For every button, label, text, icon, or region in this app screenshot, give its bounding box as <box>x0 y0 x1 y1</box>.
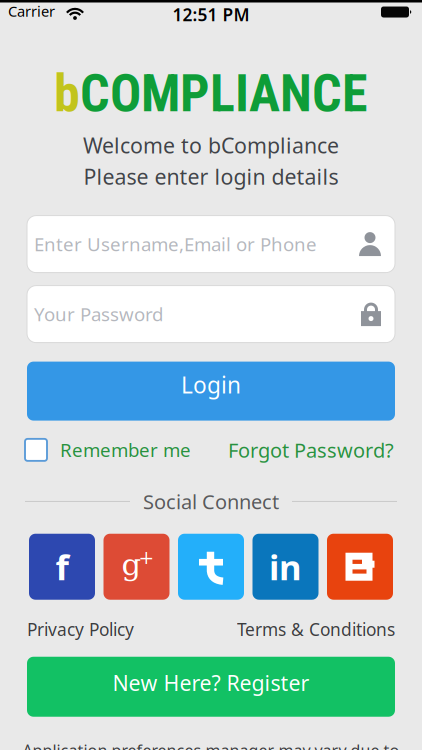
staticText: Carrier <box>8 1 55 21</box>
button[interactable]: Privacy Policy <box>27 618 134 641</box>
staticText: Welcome to bCompliance <box>83 131 339 159</box>
button[interactable]: Google Plus <box>103 534 169 600</box>
button[interactable]: Your Password <box>27 286 395 343</box>
staticText: Application preferences manager may vary… <box>22 740 399 750</box>
staticText: Social Connect <box>143 488 279 515</box>
button[interactable]: Facebook <box>29 534 95 600</box>
button[interactable]: Twitter <box>178 534 244 600</box>
staticText: f <box>55 544 68 590</box>
staticText: g <box>121 547 141 582</box>
staticText: + <box>138 547 154 568</box>
staticText: Remember me <box>60 437 191 462</box>
button[interactable]: Terms & Conditions <box>237 618 395 641</box>
staticText: Forgot Password? <box>228 437 394 463</box>
button[interactable]: Forgot Password? <box>228 437 394 463</box>
staticText: in <box>269 544 302 590</box>
button[interactable]: Login <box>27 362 395 421</box>
staticText: COMPLIANCE <box>80 63 368 124</box>
staticText: Privacy Policy <box>27 618 134 641</box>
staticText: Please enter login details <box>83 162 338 191</box>
staticText: Your Password <box>34 302 163 326</box>
button[interactable]: Remember me <box>25 437 191 462</box>
button[interactable]: LinkedIn <box>252 534 318 600</box>
staticText: Terms & Conditions <box>237 618 395 641</box>
button[interactable]: Enter Username,Email or Phone <box>27 216 395 273</box>
button[interactable]: New Here? Register <box>27 657 395 717</box>
staticText: New Here? Register <box>112 669 309 697</box>
button[interactable]: Blogger <box>327 534 393 600</box>
staticText: b <box>54 63 80 124</box>
staticText: 12:51 PM <box>172 3 249 26</box>
staticText: Login <box>181 369 241 400</box>
staticText: Enter Username,Email or Phone <box>34 232 317 256</box>
